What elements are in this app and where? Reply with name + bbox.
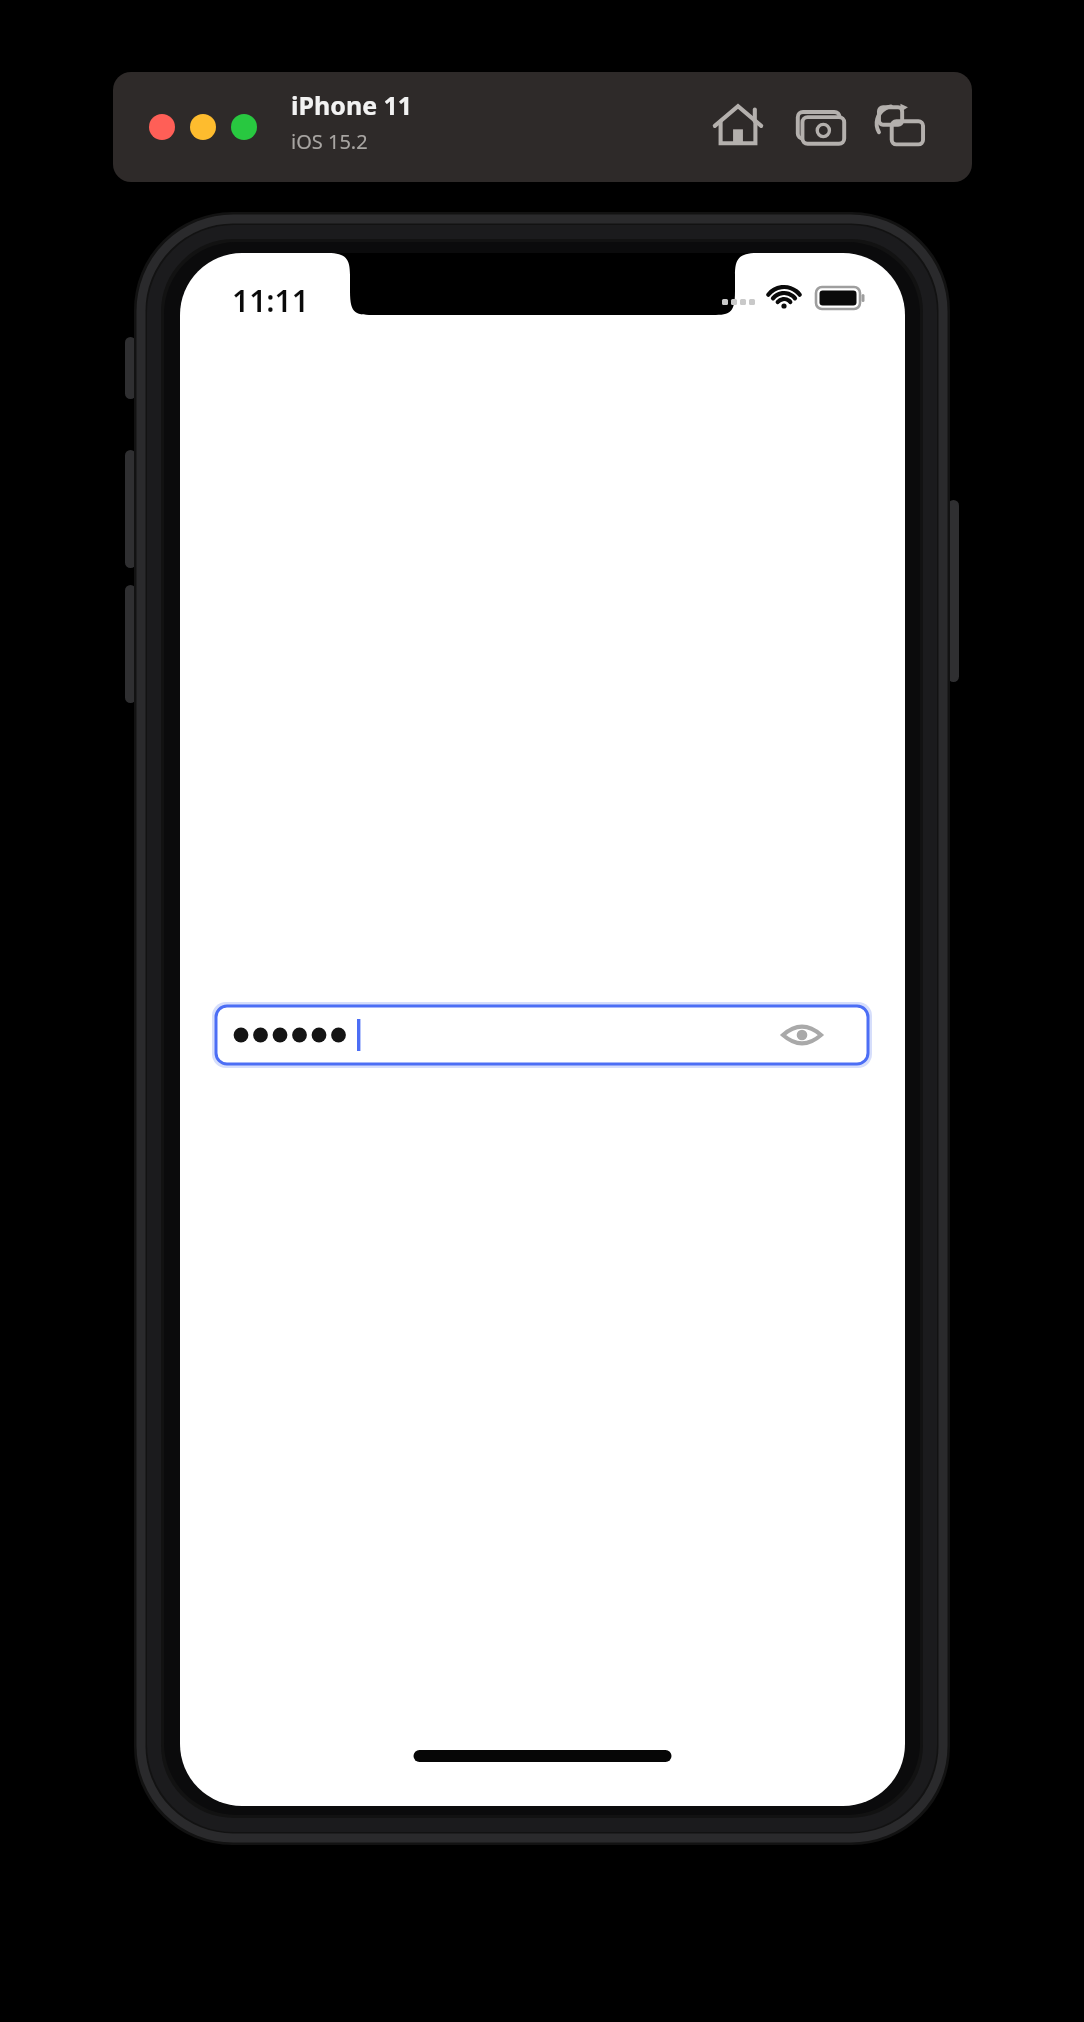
button[interactable]: Screenshot — [792, 98, 850, 156]
staticText: iOS 15.2 — [291, 128, 368, 155]
staticText: iPhone 11 — [291, 88, 413, 122]
button[interactable]: Show password — [774, 1007, 830, 1063]
staticText: 11:11 — [232, 280, 309, 321]
button[interactable] — [190, 114, 216, 140]
button[interactable] — [149, 114, 175, 140]
button[interactable]: Home — [709, 98, 767, 156]
button[interactable] — [231, 114, 257, 140]
button[interactable]: Show password — [212, 1002, 872, 1068]
button[interactable]: Rotate — [872, 98, 930, 156]
